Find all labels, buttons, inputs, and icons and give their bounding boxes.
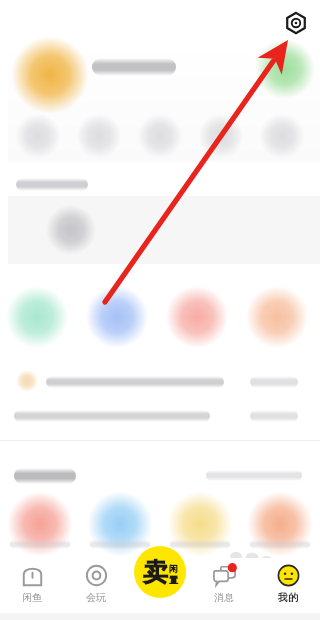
staticText: 闲鱼: [22, 591, 42, 604]
button[interactable]: 我的: [256, 558, 320, 620]
staticText: 消息: [214, 591, 234, 604]
button[interactable]: 卖闲置: [134, 546, 186, 598]
staticText: Baidu 经验: [196, 566, 268, 585]
button[interactable]: 会玩: [64, 558, 128, 620]
button[interactable]: 消息: [192, 558, 256, 620]
staticText: jingyan.baidu.com: [198, 587, 268, 598]
button[interactable]: Settings: [281, 8, 311, 38]
button[interactable]: 闲鱼: [0, 558, 64, 620]
staticText: 置: [169, 574, 178, 585]
staticText: 卖: [143, 557, 168, 588]
staticText: 我的: [278, 591, 298, 604]
staticText: 闲: [169, 563, 178, 574]
staticText: 会玩: [86, 591, 106, 604]
